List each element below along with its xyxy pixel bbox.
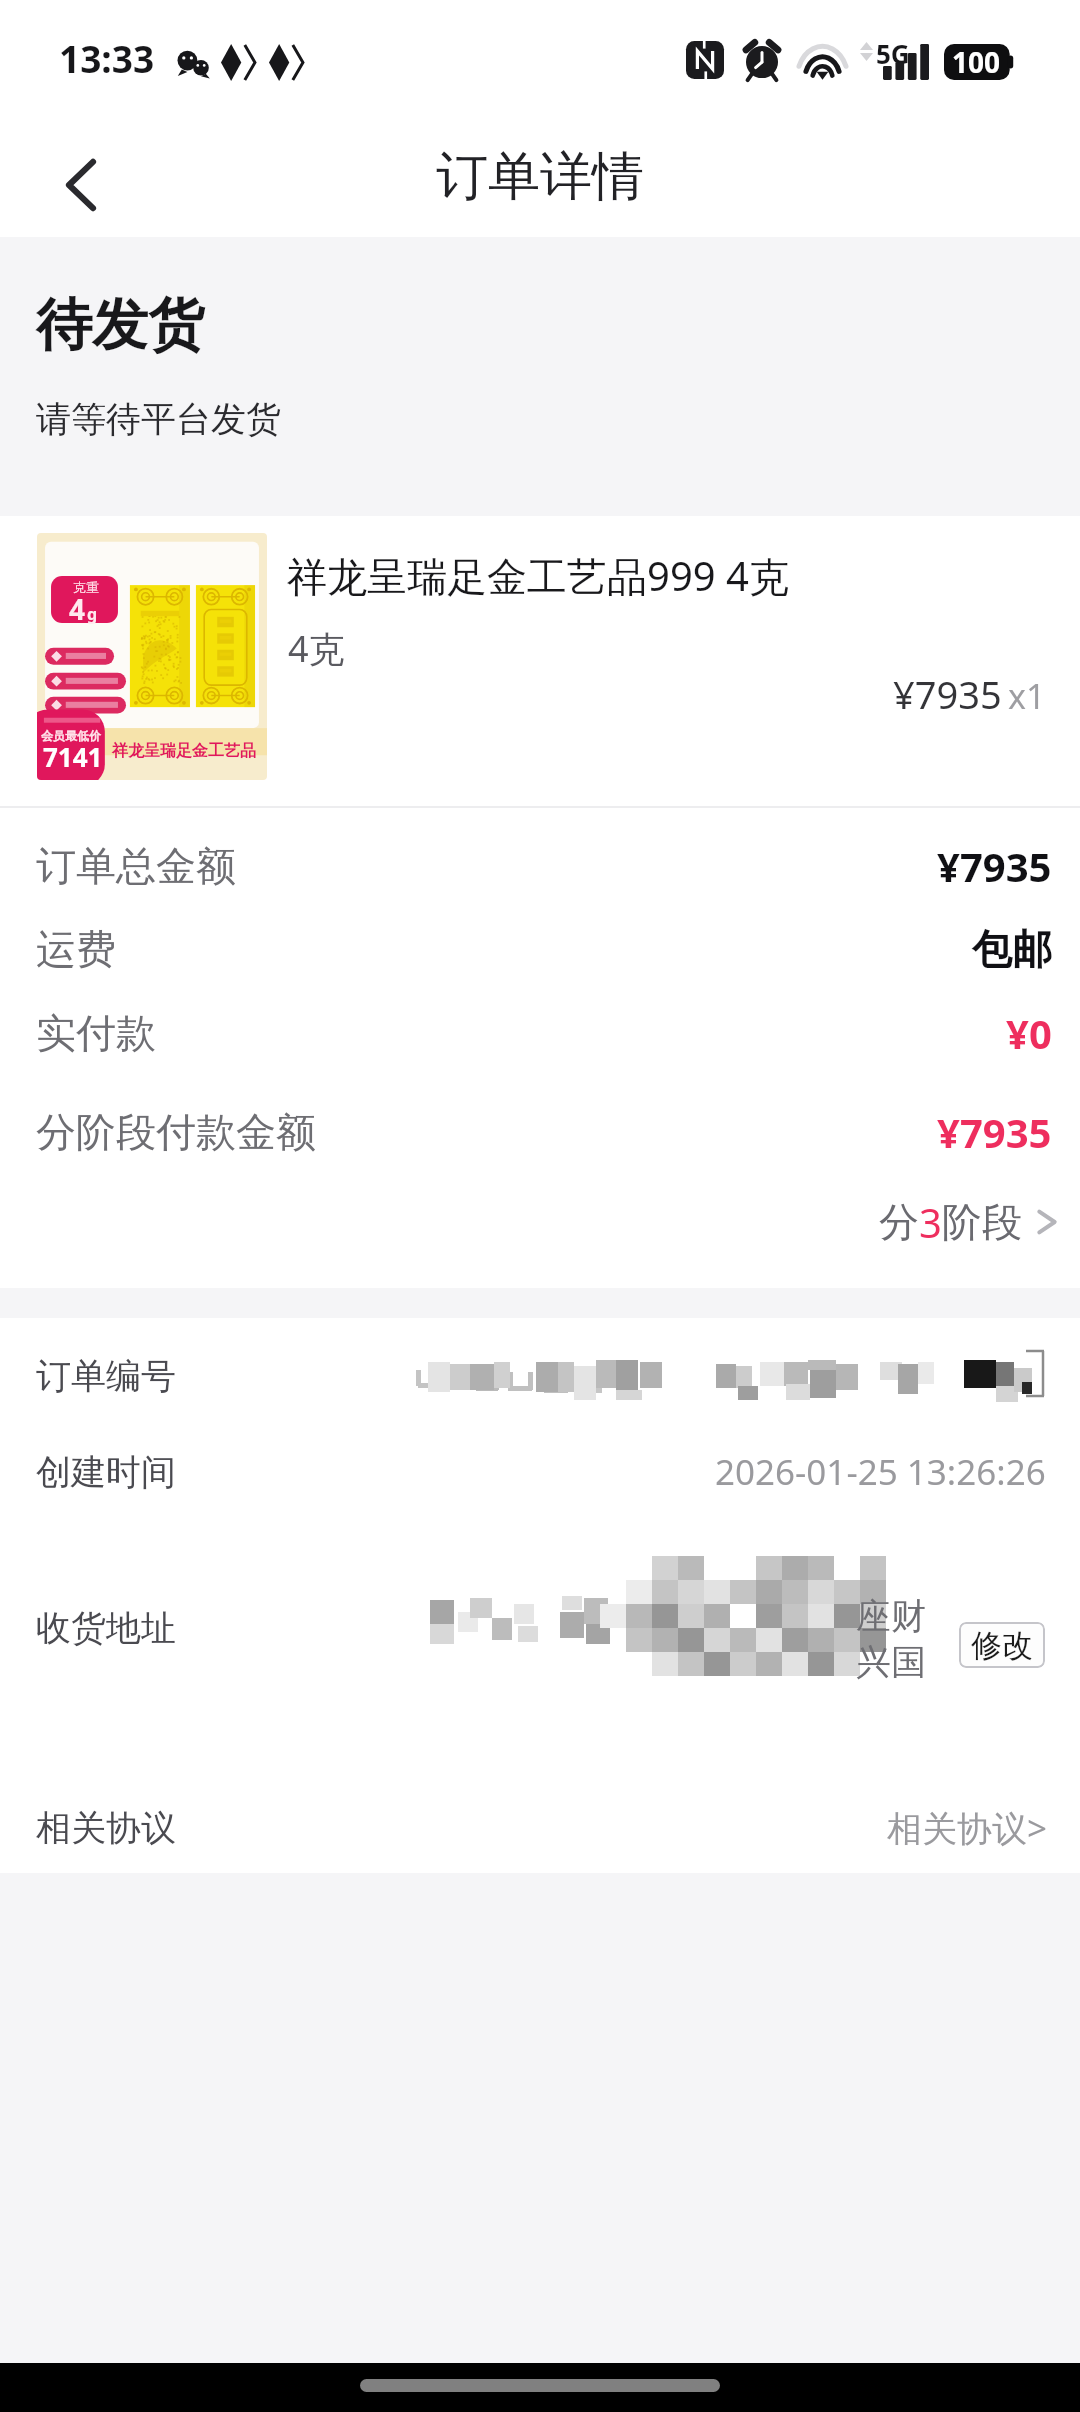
staticText: 请等待平台发货 (36, 397, 281, 441)
button[interactable]: 订单总金额 (0, 838, 1080, 894)
button[interactable]: Back (44, 140, 118, 214)
button[interactable]: 订单编号 (0, 1348, 1080, 1404)
button[interactable]: 创建时间 (0, 1444, 1080, 1500)
staticText: 兴国 (856, 1640, 926, 1684)
staticText: g (87, 603, 98, 625)
staticText: 相关协议 (36, 1806, 176, 1850)
button[interactable]: 收货地址 (0, 1600, 1080, 1656)
staticText: ¥0 (1006, 1006, 1052, 1060)
staticText: x1 (1008, 673, 1046, 719)
staticText: 7141 (43, 739, 103, 774)
staticText: 13:33 (59, 33, 155, 83)
staticText: 收货地址 (36, 1606, 176, 1650)
staticText: ¥7935 (893, 668, 1002, 720)
button[interactable]: 祥龙呈瑞足金工艺品 (37, 533, 267, 780)
button[interactable]: 修改 (959, 1622, 1045, 1668)
button[interactable]: 相关协议 (0, 1800, 1080, 1856)
staticText: 会员最低价 (41, 728, 101, 743)
staticText: 阶段 (942, 1197, 1022, 1247)
staticText: 4 (69, 590, 86, 628)
staticText: 订单总金额 (36, 841, 236, 891)
staticText: 4克 (288, 624, 345, 673)
staticText: 运费 (36, 924, 116, 974)
staticText: 分阶段付款金额 (36, 1107, 316, 1157)
staticText: 祥龙呈瑞足金工艺品 (112, 741, 256, 761)
staticText: 订单详情 (436, 144, 644, 210)
staticText: 克重 (73, 579, 99, 595)
staticText: ¥7935 (937, 839, 1052, 893)
staticText: 3 (919, 1195, 942, 1249)
staticText: 包邮 (972, 924, 1052, 974)
staticText: 创建时间 (36, 1450, 176, 1494)
button[interactable]: 实付款 (0, 1005, 1080, 1061)
staticText: 100 (952, 43, 1001, 79)
staticText: 订单编号 (36, 1354, 176, 1398)
staticText: 待发货 (36, 290, 204, 361)
staticText: 分 (879, 1197, 919, 1247)
staticText: 祥龙呈瑞足金工艺品999 4克 (287, 548, 789, 603)
staticText: 相关协议> (887, 1804, 1048, 1852)
staticText: 修改 (971, 1626, 1033, 1665)
staticText: 5G (876, 36, 910, 71)
staticText: 座财 (856, 1594, 926, 1638)
button[interactable]: 运费 (0, 921, 1080, 977)
staticText: ¥7935 (937, 1105, 1052, 1159)
staticText: 2026-01-25 13:26:26 (715, 1448, 1046, 1496)
button[interactable]: 分阶段付款金额 (0, 1104, 1080, 1160)
button[interactable]: 分 (0, 1194, 1080, 1250)
staticText: 实付款 (36, 1008, 156, 1058)
